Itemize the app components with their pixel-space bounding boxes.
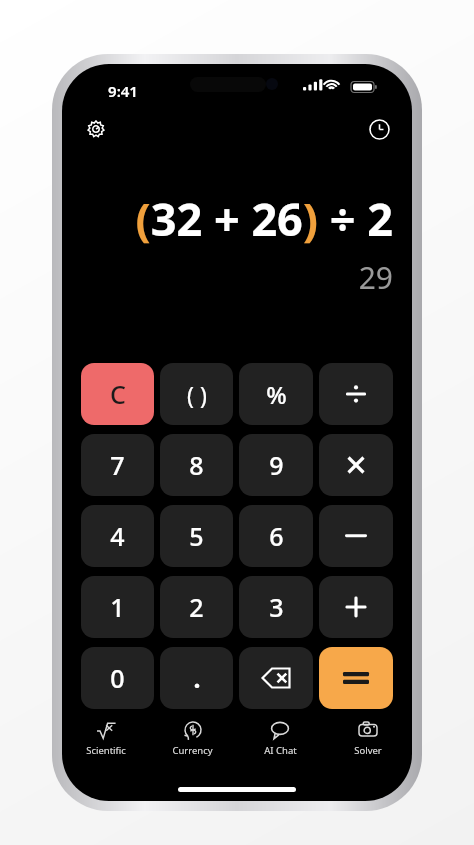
staticText: ( ) bbox=[187, 379, 207, 410]
staticText: 3 bbox=[269, 590, 284, 624]
button[interactable]: 9 bbox=[239, 434, 313, 496]
button[interactable]: % bbox=[239, 363, 313, 425]
staticText: 6 bbox=[269, 519, 284, 553]
staticText: 8 bbox=[189, 448, 204, 482]
staticText: 29 bbox=[358, 257, 393, 298]
staticText: Currency bbox=[172, 744, 213, 757]
staticText: 1 bbox=[110, 590, 125, 624]
button[interactable]: 8 bbox=[160, 434, 233, 496]
button[interactable]: . bbox=[160, 647, 233, 709]
staticText: 0 bbox=[110, 661, 125, 695]
staticText: . bbox=[193, 661, 201, 695]
staticText: C bbox=[110, 377, 126, 411]
staticText: 9:41 bbox=[108, 81, 138, 101]
button[interactable]: C bbox=[81, 363, 154, 425]
button[interactable] bbox=[319, 363, 393, 425]
button[interactable] bbox=[319, 434, 393, 496]
staticText: 4 bbox=[110, 519, 125, 553]
button[interactable]: Scientific bbox=[62, 717, 149, 765]
staticText: 9 bbox=[269, 448, 284, 482]
button[interactable]: AI Chat bbox=[236, 717, 324, 765]
button[interactable]: Currency bbox=[149, 717, 236, 765]
staticText: Solver bbox=[354, 744, 382, 757]
button[interactable]: 0 bbox=[81, 647, 154, 709]
staticText: Scientific bbox=[86, 744, 126, 757]
button[interactable]: 7 bbox=[81, 434, 154, 496]
button[interactable]: Solver bbox=[324, 717, 412, 765]
button[interactable] bbox=[319, 505, 393, 567]
staticText: 2 bbox=[189, 590, 204, 624]
button[interactable]: 4 bbox=[81, 505, 154, 567]
button[interactable]: Settings bbox=[79, 112, 113, 146]
button[interactable]: 3 bbox=[239, 576, 313, 638]
button[interactable]: ( ) bbox=[160, 363, 233, 425]
button[interactable] bbox=[319, 576, 393, 638]
staticText: 5 bbox=[189, 519, 204, 553]
button[interactable]: 1 bbox=[81, 576, 154, 638]
button[interactable]: History bbox=[362, 112, 396, 146]
staticText: % bbox=[266, 378, 287, 411]
button[interactable]: 5 bbox=[160, 505, 233, 567]
staticText: AI Chat bbox=[264, 744, 297, 757]
button[interactable] bbox=[319, 647, 393, 709]
button[interactable]: Backspace bbox=[239, 647, 313, 709]
staticText: (32 + 26) ÷ 2 bbox=[135, 188, 393, 249]
button[interactable]: 6 bbox=[239, 505, 313, 567]
staticText: 7 bbox=[110, 448, 125, 482]
button[interactable]: 2 bbox=[160, 576, 233, 638]
